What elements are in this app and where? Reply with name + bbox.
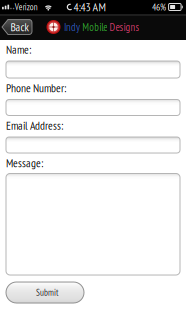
staticText: Indy xyxy=(64,20,80,34)
staticText: 46% xyxy=(152,1,166,13)
staticText: Name: xyxy=(6,42,31,57)
staticText: Submit xyxy=(36,287,58,298)
button[interactable]: Back xyxy=(2,19,32,34)
staticText: Designs xyxy=(109,20,139,34)
staticText: Email Address: xyxy=(6,118,63,133)
staticText: Phone Number: xyxy=(6,81,66,95)
staticText: Message: xyxy=(6,156,43,170)
staticText: Back xyxy=(10,20,28,34)
staticText: Verizon xyxy=(15,1,38,13)
staticText: Mobile xyxy=(82,20,107,34)
staticText: 4:43 AM xyxy=(73,0,105,15)
button[interactable]: Submit xyxy=(6,282,84,303)
